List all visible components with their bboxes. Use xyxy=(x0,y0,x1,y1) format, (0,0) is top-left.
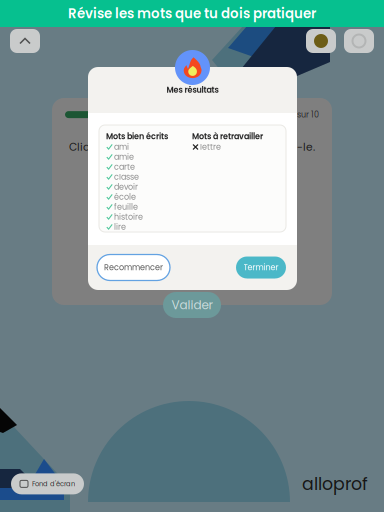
staticText: Fond d'écran xyxy=(32,479,75,488)
staticText: classe xyxy=(114,171,139,183)
staticText: devoir xyxy=(114,181,138,193)
button[interactable]: Valider xyxy=(163,292,221,318)
staticText: amie xyxy=(114,151,134,163)
staticText: école xyxy=(114,191,136,203)
staticText: histoire xyxy=(114,211,143,223)
button[interactable]: Réglages xyxy=(344,29,374,53)
staticText: lire xyxy=(114,221,126,233)
staticText: 10 sur 10 xyxy=(287,109,319,120)
staticText: Révise les mots que tu dois pratiquer xyxy=(68,4,316,23)
button[interactable]: Retour xyxy=(10,29,40,53)
button[interactable]: Mes pièces xyxy=(306,29,336,53)
staticText: Terminer xyxy=(243,262,278,273)
staticText: Mots bien écrits xyxy=(106,131,168,142)
staticText: carte xyxy=(114,161,135,173)
staticText: Clique sur le mot pour l'écouter, puis é… xyxy=(69,139,315,154)
staticText: Recommencer xyxy=(104,262,163,273)
staticText: Mots à retravailler xyxy=(192,131,263,142)
staticText: ami xyxy=(114,141,129,153)
staticText: alloprof xyxy=(302,472,368,496)
staticText: Mes résultats xyxy=(166,84,218,96)
staticText: lettre xyxy=(200,141,221,153)
button[interactable]: Fond d'écran xyxy=(11,473,84,494)
button[interactable]: Recommencer xyxy=(97,254,170,280)
button[interactable]: Terminer xyxy=(236,256,286,278)
staticText: feuille xyxy=(114,201,138,213)
staticText: Valider xyxy=(171,297,212,313)
